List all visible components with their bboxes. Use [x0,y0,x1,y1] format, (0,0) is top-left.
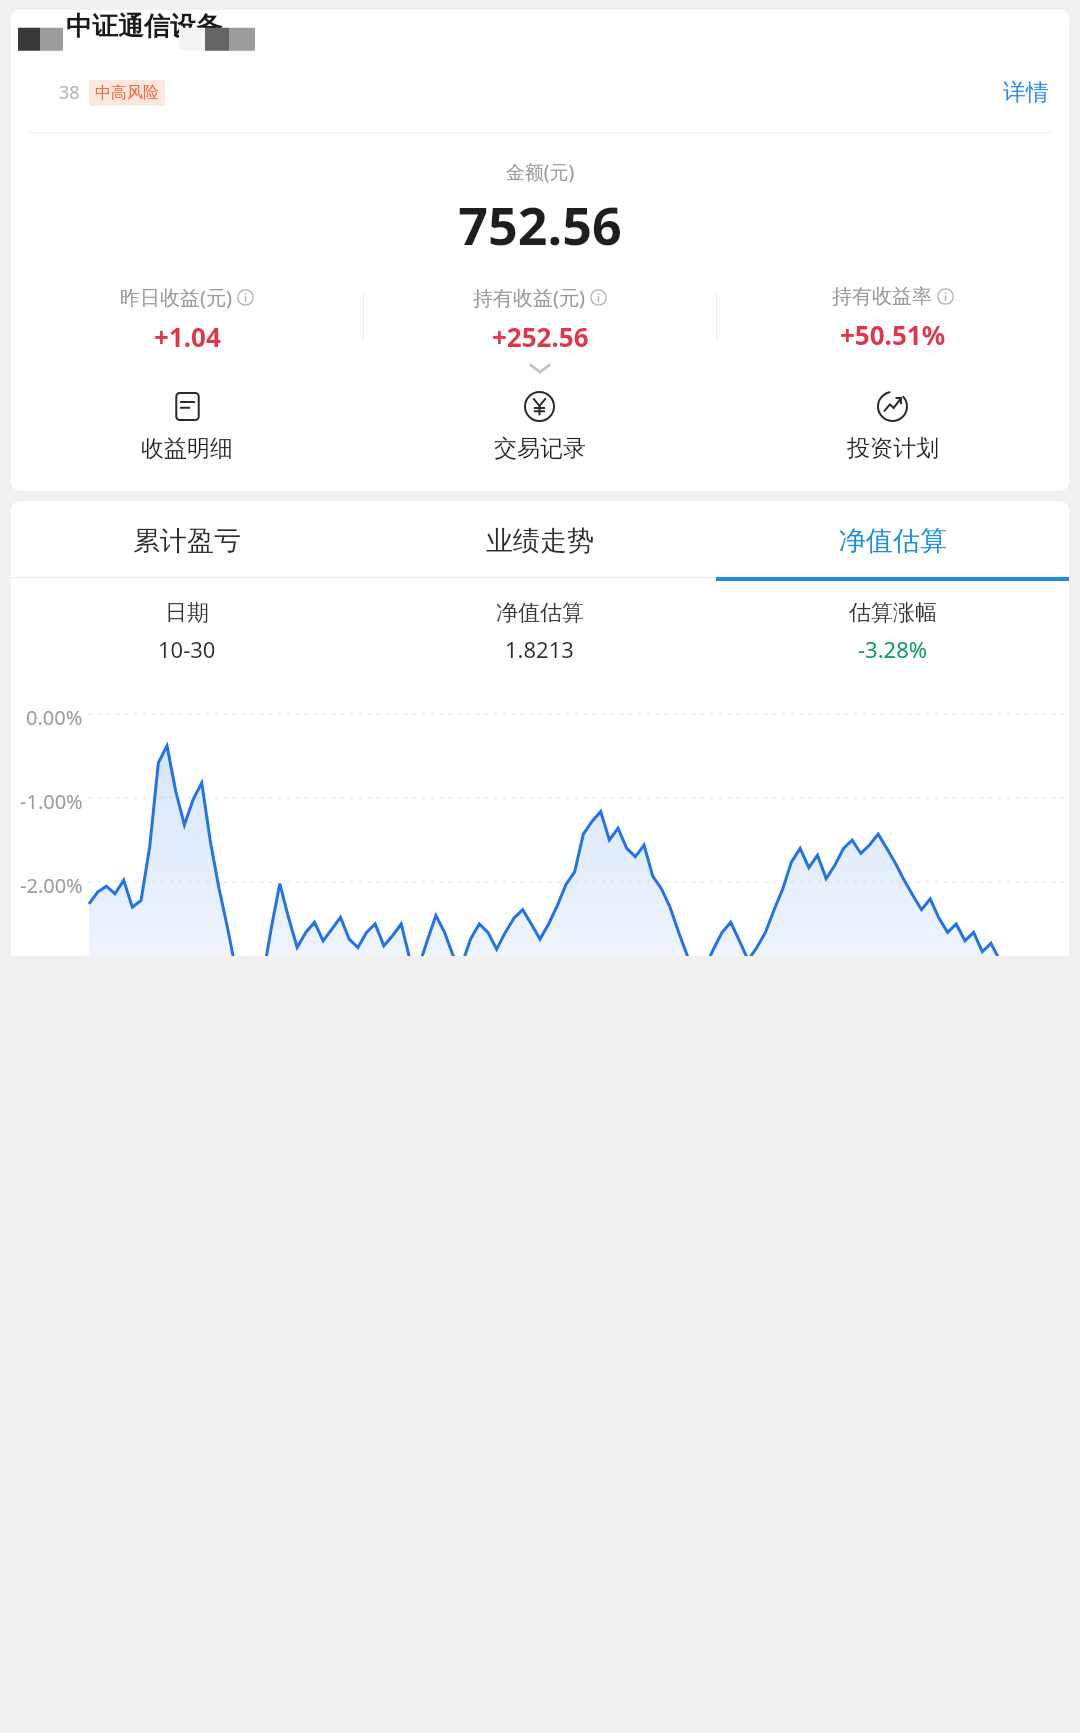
staticText: -1.00% [20,788,83,815]
staticText: -3.28% [858,634,928,664]
staticText: 详情 [1003,78,1049,107]
staticText: 昨日收益(元) [120,284,232,311]
button[interactable]: 净值估算 [716,501,1069,581]
staticText: 10-30 [158,634,216,664]
staticText: 1.8213 [505,634,574,664]
staticText: +50.51% [840,317,946,350]
staticText: 0.00% [26,704,83,731]
button[interactable]: 投资计划 [716,390,1069,463]
staticText: 交易记录 [494,434,586,463]
staticText: 金额(元) [11,159,1069,185]
staticText: +252.56 [492,319,589,350]
staticText: 中高风险 [95,83,159,103]
button[interactable]: 详情 [1000,74,1052,111]
staticText: -2.00% [20,872,83,899]
button[interactable]: 昨日收益(元) [11,284,363,350]
staticText: 累计盈亏 [133,524,241,558]
button[interactable]: 交易记录 [363,390,716,463]
staticText: 持有收益(元) [473,284,585,311]
staticText: 净值估算 [496,599,584,627]
staticText: 752.56 [11,189,1069,260]
staticText: 日期 [165,599,209,627]
staticText: 38 [59,80,80,105]
button[interactable]: 持有收益(元) [364,284,716,350]
staticText: 估算涨幅 [849,599,937,627]
button[interactable]: 收益明细 [11,390,363,463]
button[interactable]: 持有收益率 [717,284,1069,350]
staticText: +1.04 [154,319,221,350]
button[interactable]: 累计盈亏 [11,501,363,581]
staticText: 净值估算 [839,524,947,558]
staticText: 收益明细 [141,434,233,463]
button[interactable]: 业绩走势 [363,501,716,581]
staticText: 投资计划 [847,434,939,463]
staticText: 中证通信设备 [66,10,222,43]
staticText: 持有收益率 [832,284,932,309]
staticText: 业绩走势 [486,524,594,558]
